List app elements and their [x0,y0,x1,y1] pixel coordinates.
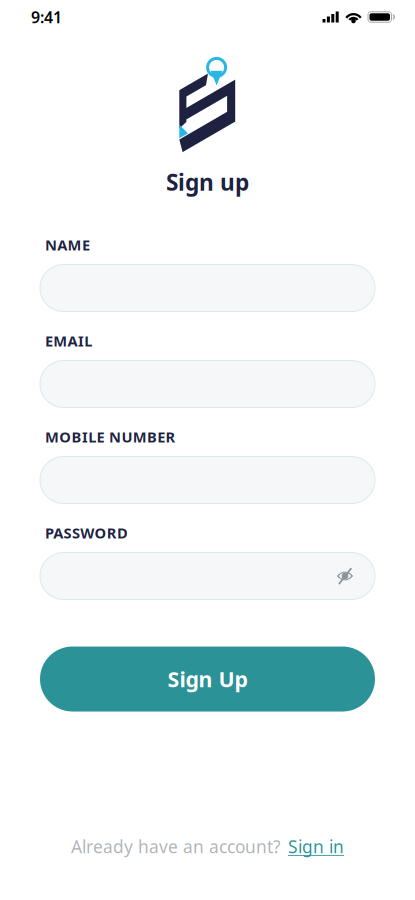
staticText: Already have an account? [71,835,281,858]
staticText: Sign up [166,167,249,197]
staticText: MOBILE NUMBER [45,427,176,447]
staticText: Sign in [288,835,344,858]
staticText: Sign Up [167,665,247,693]
staticText: NAME [45,235,90,255]
button[interactable]: Sign in [288,835,344,858]
button[interactable]: Sign Up [40,646,375,711]
staticText: PASSWORD [45,523,128,542]
staticText: EMAIL [45,331,92,351]
staticText: 9:41 [31,6,62,28]
